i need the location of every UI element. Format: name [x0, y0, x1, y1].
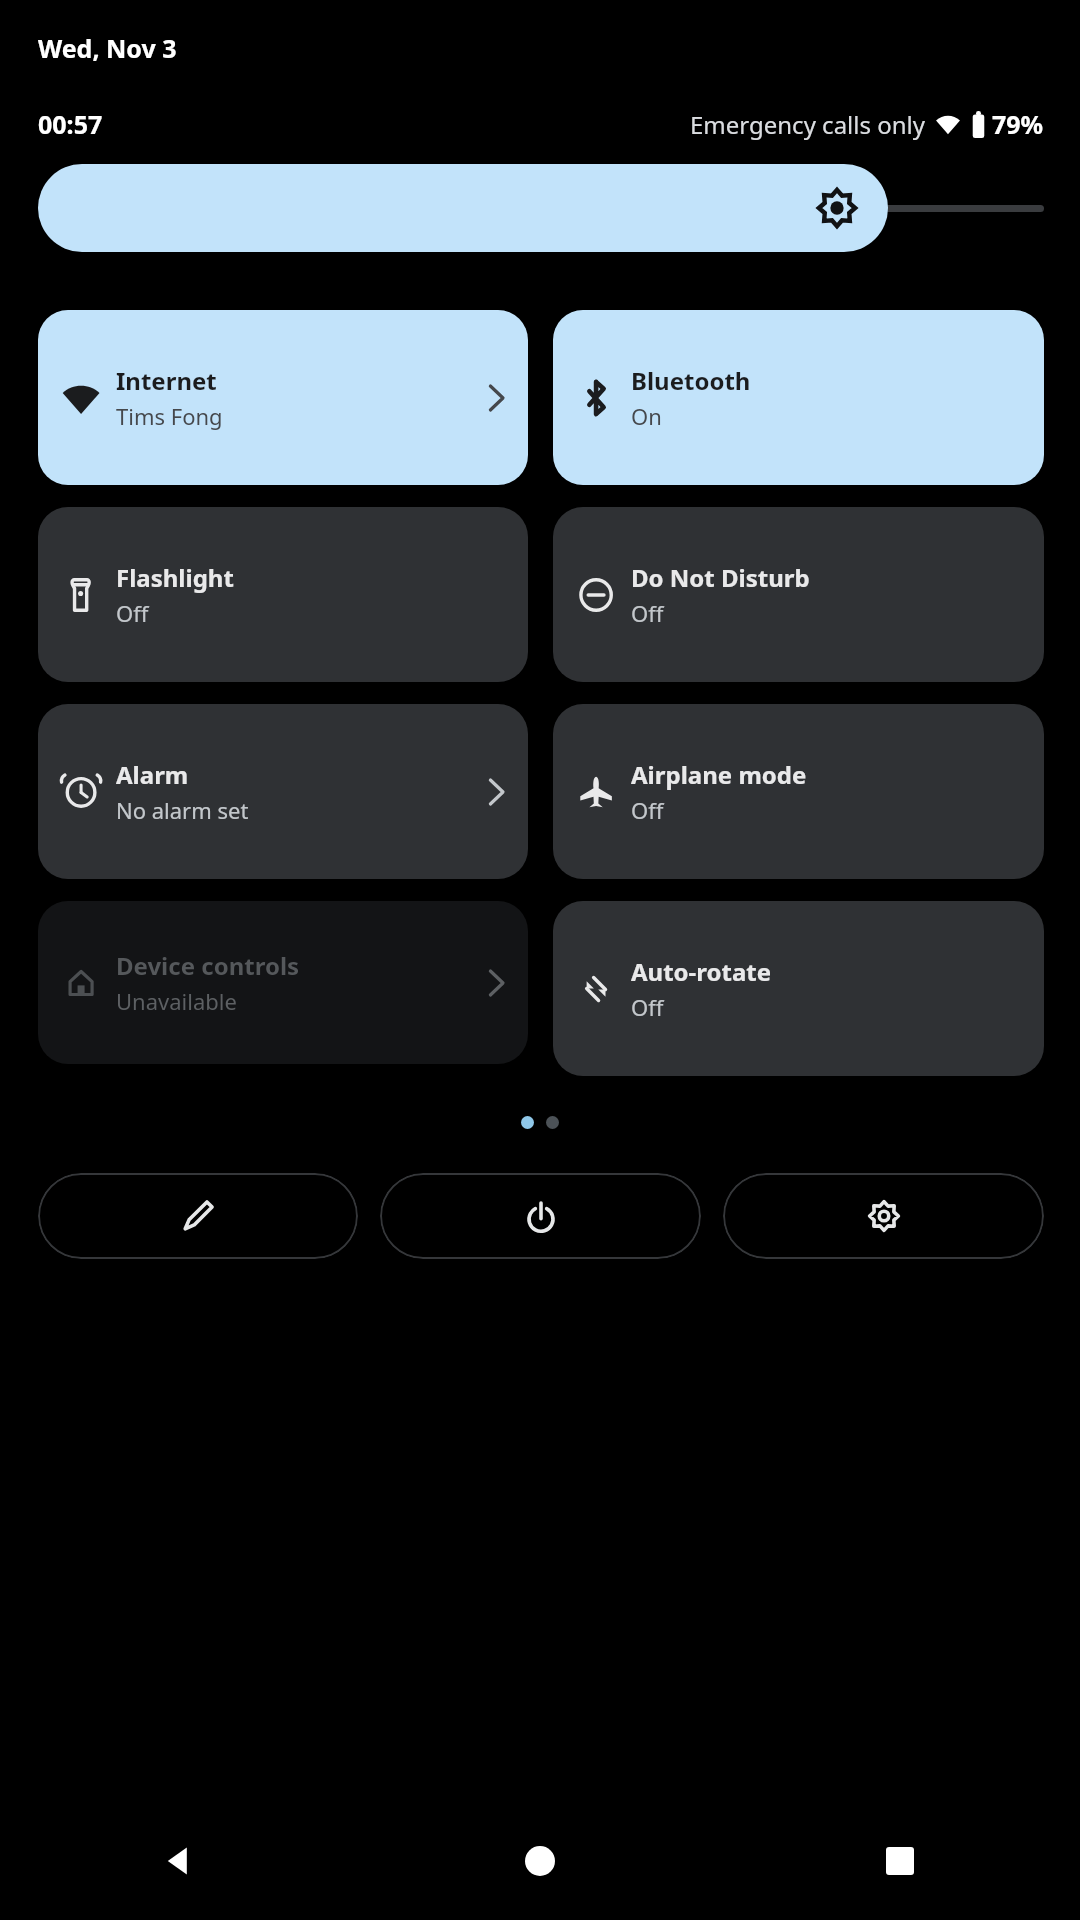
button[interactable]: Bluetooth	[553, 310, 1044, 485]
button[interactable]: Settings	[723, 1173, 1044, 1259]
button[interactable]: Auto-rotate	[553, 901, 1044, 1076]
staticText: Emergency calls only	[690, 108, 926, 141]
staticText: Off	[116, 598, 149, 628]
button[interactable]: Home	[360, 1802, 720, 1920]
staticText: Off	[631, 598, 664, 628]
staticText: Internet	[116, 364, 217, 397]
staticText: 79%	[992, 107, 1044, 141]
staticText: Off	[631, 992, 664, 1022]
staticText: No alarm set	[116, 795, 249, 825]
staticText: Tims Fong	[116, 401, 223, 431]
button[interactable]: Recent apps	[720, 1802, 1080, 1920]
staticText: Airplane mode	[631, 758, 807, 791]
staticText: Device controls	[116, 949, 300, 982]
button[interactable]: Do Not Disturb	[553, 507, 1044, 682]
button[interactable]: Back	[0, 1802, 360, 1920]
staticText: Unavailable	[116, 986, 237, 1016]
button[interactable]: Alarm	[38, 704, 528, 879]
staticText: Flashlight	[116, 561, 234, 594]
button[interactable]: Brightness	[38, 164, 888, 252]
staticText: On	[631, 401, 662, 431]
staticText: Auto-rotate	[631, 955, 772, 988]
button[interactable]: Power	[380, 1173, 701, 1259]
button[interactable]: Airplane mode	[553, 704, 1044, 879]
staticText: Bluetooth	[631, 364, 751, 397]
staticText: Do Not Disturb	[631, 561, 810, 594]
staticText: Wed, Nov 3	[38, 31, 177, 65]
button[interactable]: Device controls	[38, 901, 528, 1064]
staticText: Off	[631, 795, 664, 825]
button[interactable]: Flashlight	[38, 507, 528, 682]
staticText: 00:57	[38, 107, 103, 141]
staticText: Alarm	[116, 758, 189, 791]
button[interactable]: Edit	[38, 1173, 358, 1259]
button[interactable]: Internet	[38, 310, 528, 485]
